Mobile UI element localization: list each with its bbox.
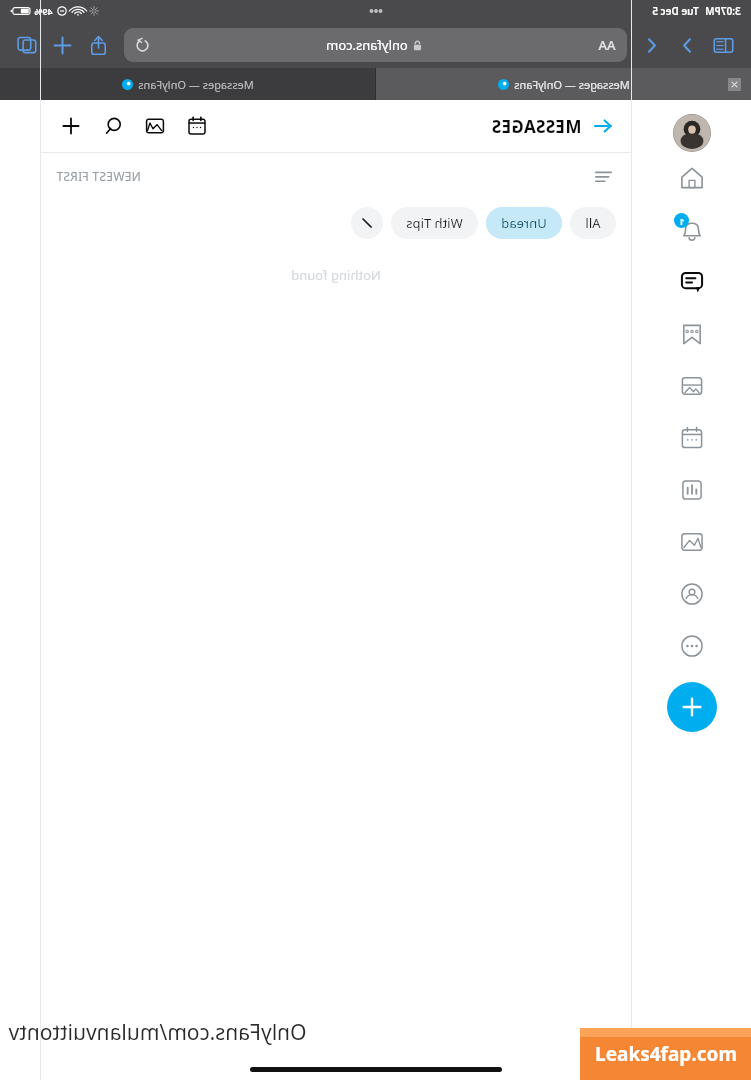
button[interactable]: Profile [673,114,711,152]
button[interactable]: With Tips [391,207,478,239]
button[interactable]: New post [667,682,717,732]
staticText: MESSAGES [491,115,582,138]
button[interactable]: Messages — OnlyFans [0,68,375,100]
button[interactable]: Queue [666,412,718,464]
staticText: 1 [679,215,685,227]
button[interactable]: More [666,620,718,672]
button[interactable]: Back [637,30,667,60]
button[interactable]: Share [84,30,114,60]
button[interactable]: New message [56,111,86,141]
staticText: Messages — OnlyFans [138,77,254,92]
button[interactable]: Tabs [12,30,42,60]
button[interactable]: Unread [486,207,562,239]
button[interactable]: Statistics [666,464,718,516]
button[interactable]: Close tab [376,68,751,100]
staticText: NEWEST FIRST [56,168,141,184]
button[interactable]: AA [124,28,627,62]
button[interactable]: Scheduled [182,111,212,141]
button[interactable]: Media [140,111,170,141]
staticText: 49% [34,5,53,17]
button[interactable]: Vault [666,360,718,412]
staticText: Tue Dec 5 [652,4,699,18]
staticText: Nothing found [291,266,381,284]
button[interactable]: Collapse [588,111,618,141]
staticText: All [585,214,601,232]
button[interactable]: Messages [666,256,718,308]
button[interactable]: Close tab [728,78,741,91]
staticText: Leaks4fap.com [595,1041,737,1067]
staticText: With Tips [406,214,463,232]
staticText: Messages — OnlyFans [514,77,630,92]
staticText: 3:07PM [705,4,741,18]
button[interactable]: Search [98,111,128,141]
button[interactable]: New tab [48,30,78,60]
staticText: AA [598,36,616,54]
button[interactable]: My profile [666,568,718,620]
button[interactable]: Home [666,152,718,204]
button[interactable]: Collections [666,308,718,360]
button[interactable]: Notifications [666,204,718,256]
staticText: onlyfans.com [326,36,408,54]
button[interactable]: Edit [351,207,383,239]
button[interactable]: Sort [590,162,618,190]
button[interactable]: Sidebar [709,30,739,60]
button[interactable]: Photos [666,516,718,568]
staticText: Unread [501,214,547,232]
button[interactable]: Leaks4fap.com [580,1028,751,1080]
button[interactable]: Forward [673,30,703,60]
staticText: OnlyFans.com/mulanvuittontv [8,1018,307,1047]
button[interactable]: All [570,207,616,239]
